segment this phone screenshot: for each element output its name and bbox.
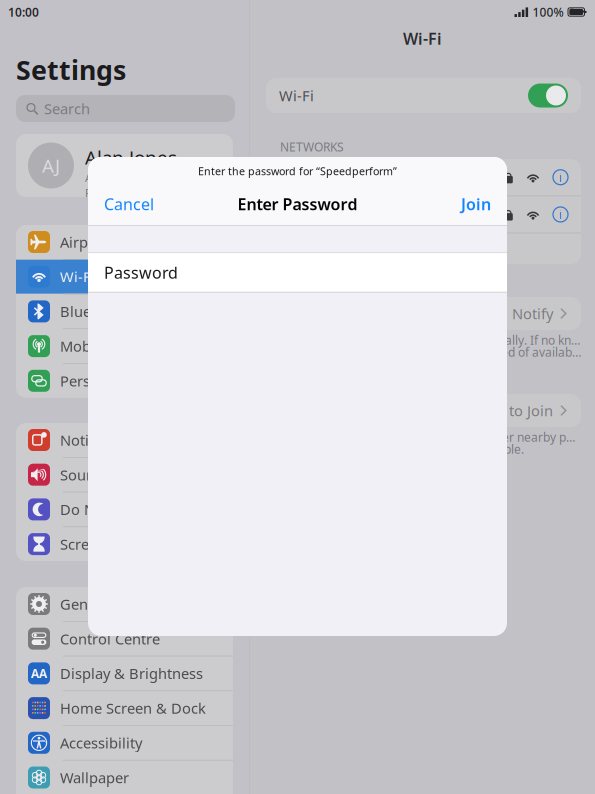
staticText: Enter Password xyxy=(237,193,357,215)
button[interactable]: Personal Hotspot xyxy=(16,364,233,398)
button[interactable]: Wi-Fi xyxy=(16,260,233,294)
staticText: 10:00 xyxy=(8,4,39,20)
button[interactable]: Do Not Disturb xyxy=(16,492,233,527)
staticText: BT-5GHZ-9KN2 xyxy=(279,205,381,224)
button[interactable]: Other… xyxy=(266,233,581,264)
staticText: Mobile Data xyxy=(60,336,143,356)
staticText: Home Screen & Dock xyxy=(60,698,206,718)
staticText: Speedperform xyxy=(279,167,378,187)
staticText: i xyxy=(559,169,562,185)
button[interactable]: Auto-Join Hotspot xyxy=(266,394,581,427)
staticText: Cancel xyxy=(104,193,154,215)
staticText: Airplane Mode xyxy=(60,232,160,252)
staticText: Ask to Join xyxy=(481,401,553,420)
button[interactable]: Home Screen & Dock xyxy=(16,691,233,726)
button[interactable]: AJ xyxy=(16,134,233,197)
staticText: Wi-Fi xyxy=(279,86,314,105)
button[interactable]: Screen Time xyxy=(16,527,233,561)
staticText: General xyxy=(60,594,114,614)
staticText: i xyxy=(559,206,562,222)
staticText: Control Centre xyxy=(60,629,160,648)
button[interactable]: Bluetooth xyxy=(16,294,233,329)
staticText: AA xyxy=(31,665,47,681)
staticText: Other… xyxy=(279,239,328,258)
button[interactable]: Speedperform xyxy=(266,159,581,195)
staticText: 100% xyxy=(532,4,563,20)
staticText: Display & Brightness xyxy=(60,664,203,683)
staticText: Sounds xyxy=(60,465,111,484)
staticText: Search xyxy=(44,99,90,118)
button[interactable]: Join xyxy=(461,191,491,217)
staticText: Screen Time xyxy=(60,534,144,554)
staticText: Wallpaper xyxy=(60,768,129,787)
button[interactable]: Search xyxy=(16,95,235,122)
staticText: Join xyxy=(461,193,491,215)
button[interactable]: Mobile Data xyxy=(16,329,233,364)
button[interactable]: Control Centre xyxy=(16,622,233,656)
button[interactable]: Ask to Join Networks xyxy=(266,297,581,330)
staticText: Purchases xyxy=(85,186,136,200)
staticText: hotspots when no Wi-Fi network is availa… xyxy=(280,441,524,457)
button[interactable]: Wallpaper xyxy=(16,760,233,794)
staticText: Enter the password for “Speedperform” xyxy=(198,164,397,178)
button[interactable]: Airplane Mode xyxy=(16,225,233,260)
staticText: Allow this device to automatically disco… xyxy=(280,429,581,445)
staticText: Notifications xyxy=(60,430,147,450)
staticText: Password xyxy=(104,262,178,283)
staticText: AJ xyxy=(42,153,60,178)
staticText: networks are available, you will be noti… xyxy=(280,344,581,360)
button[interactable]: AA xyxy=(16,656,233,691)
button[interactable]: Wi-Fi xyxy=(266,78,581,113)
button[interactable]: General xyxy=(16,587,233,622)
staticText: NETWORKS xyxy=(280,139,344,155)
button[interactable]: Notifications xyxy=(16,423,233,458)
staticText: Personal Hotspot xyxy=(60,371,179,391)
staticText: Do Not Disturb xyxy=(60,500,164,519)
button[interactable]: Sounds xyxy=(16,458,233,492)
button[interactable]: Cancel xyxy=(104,191,154,217)
staticText: Known networks will be joined automatica… xyxy=(280,332,581,348)
button[interactable]: BT-5GHZ-9KN2 xyxy=(266,196,581,233)
staticText: Apple ID, iCloud, Media & xyxy=(85,171,217,185)
staticText: Accessibility xyxy=(60,733,142,753)
staticText: Wi-Fi xyxy=(60,267,95,286)
staticText: Bluetooth xyxy=(60,302,128,321)
button[interactable]: Accessibility xyxy=(16,726,233,760)
staticText: Wi-Fi xyxy=(403,28,442,49)
staticText: Notify xyxy=(512,304,553,323)
staticText: Settings xyxy=(16,52,126,87)
staticText: Alan Jones xyxy=(85,145,177,170)
